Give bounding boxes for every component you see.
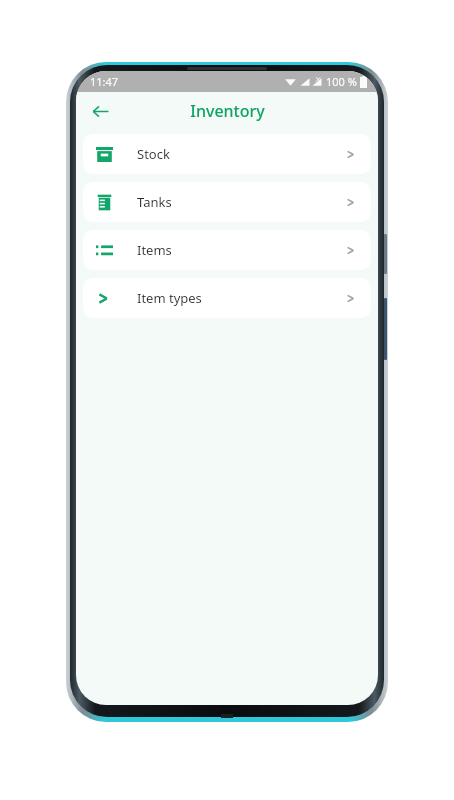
staticText: Items [137,241,172,259]
button[interactable]: Items [83,230,371,270]
staticText: Tanks [137,193,172,211]
staticText: Item types [137,289,202,307]
staticText: 11:47 [90,74,119,89]
staticText: Stock [137,145,170,163]
staticText: 100 % [326,74,357,89]
button[interactable]: Tanks [83,182,371,222]
button[interactable]: Item types [83,278,371,318]
button[interactable]: Back [82,93,118,129]
button[interactable]: Stock [83,134,371,174]
staticText: Inventory [190,100,265,122]
